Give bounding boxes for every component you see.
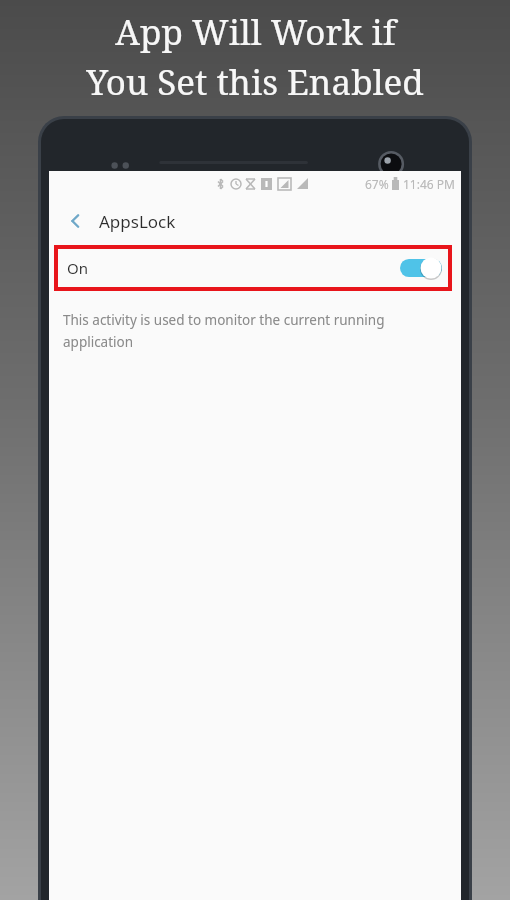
staticText: You Set this Enabled — [86, 58, 424, 106]
staticText: App Will Work if — [115, 8, 396, 56]
staticText: This activity is used to monitor the cur… — [63, 311, 441, 351]
staticText: 11:46 PM — [403, 176, 455, 192]
staticText: 67% — [365, 176, 389, 192]
button[interactable]: Toggle on — [400, 257, 442, 279]
staticText: On — [67, 258, 88, 278]
button[interactable]: On — [54, 245, 452, 291]
staticText: AppsLock — [99, 210, 176, 233]
button[interactable]: Back — [61, 206, 91, 236]
button[interactable]: Back — [49, 197, 461, 245]
